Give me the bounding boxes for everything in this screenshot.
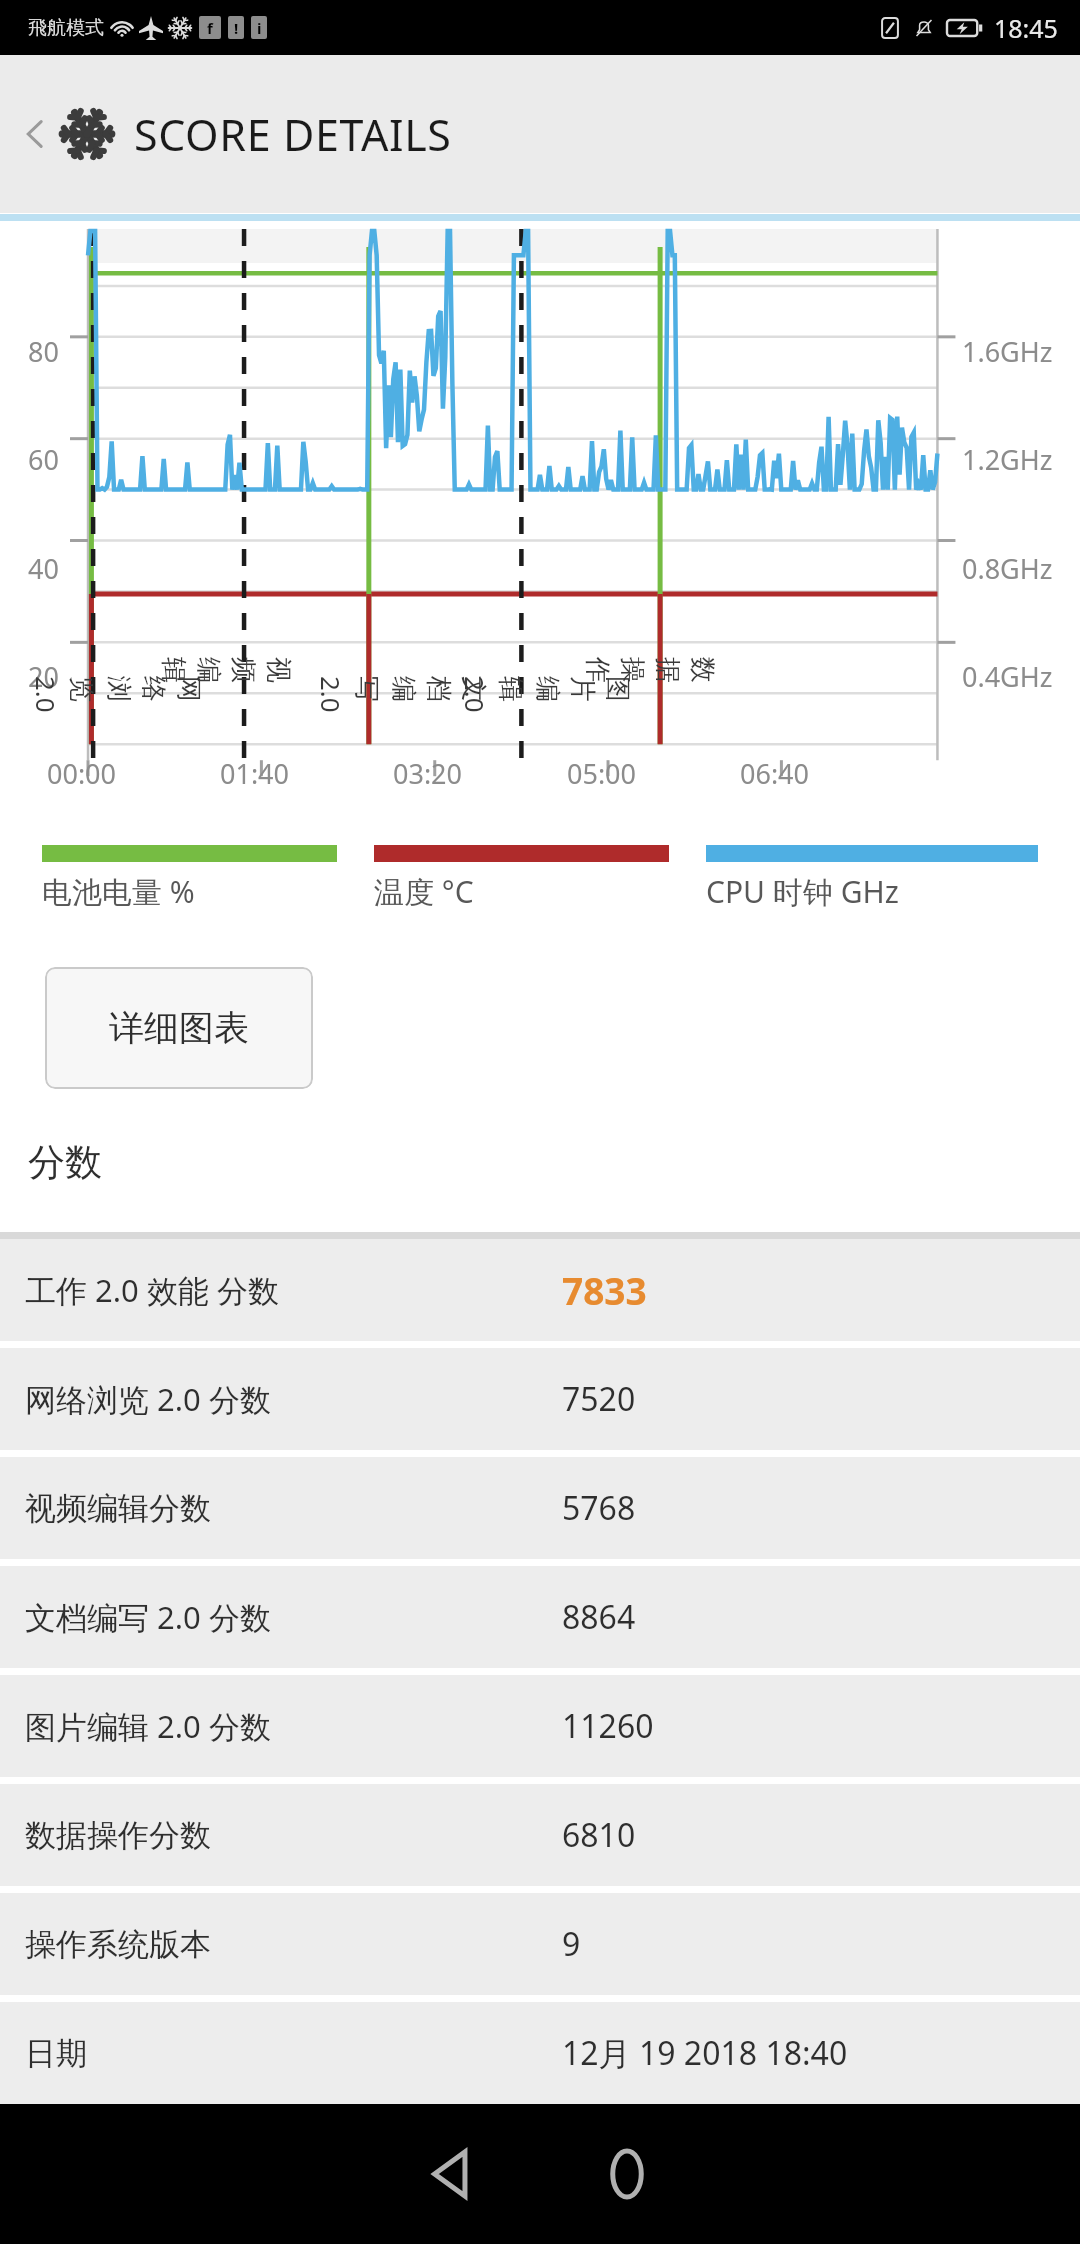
staticText: 数据操作	[581, 657, 719, 699]
staticText: !	[234, 18, 239, 38]
button[interactable]: 操作系统版本	[0, 1893, 1080, 1995]
staticText: 1.2GHz	[962, 441, 1053, 478]
button[interactable]: 数据操作分数	[0, 1784, 1080, 1886]
staticText: 60	[28, 441, 59, 478]
staticText: 图片编辑 2.0 分数	[25, 1705, 271, 1747]
button[interactable]: Home	[567, 2114, 687, 2234]
staticText: 0.4GHz	[962, 658, 1053, 695]
staticText: 6810	[562, 1813, 636, 1857]
button[interactable]: 详细图表	[45, 967, 313, 1089]
staticText: 12月 19 2018 18:40	[562, 2031, 848, 2075]
staticText: 9	[562, 1922, 581, 1966]
button[interactable]: 工作 2.0 效能 分数	[0, 1239, 1080, 1341]
staticText: 电池电量 %	[42, 871, 195, 912]
staticText: 日期	[25, 2034, 87, 2073]
staticText: 1.6GHz	[962, 333, 1053, 370]
button[interactable]: 网络浏览 2.0 分数	[0, 1348, 1080, 1450]
button[interactable]: 日期	[0, 2002, 1080, 2104]
staticText: SCORE DETAILS	[134, 105, 452, 164]
staticText: 03:20	[393, 755, 463, 792]
staticText: 06:40	[740, 755, 810, 792]
staticText: 视频编辑	[157, 657, 295, 699]
staticText: 工作 2.0 效能 分数	[25, 1269, 279, 1311]
staticText: 20	[28, 658, 59, 695]
staticText: 7520	[562, 1377, 636, 1421]
staticText: CPU 时钟 GHz	[706, 871, 899, 912]
staticText: 05:00	[567, 755, 637, 792]
button[interactable]: 图片编辑 2.0 分数	[0, 1675, 1080, 1777]
button[interactable]: Back	[393, 2114, 513, 2234]
staticText: 7833	[562, 1265, 647, 1315]
staticText: 8864	[562, 1595, 636, 1639]
staticText: 视频编辑分数	[25, 1489, 211, 1528]
staticText: 文档编写 2.0 分数	[25, 1596, 271, 1638]
staticText: 操作系统版本	[25, 1925, 211, 1964]
staticText: f	[207, 18, 213, 38]
staticText: i	[257, 18, 262, 38]
button[interactable]: 视频编辑分数	[0, 1457, 1080, 1559]
staticText: 网络浏览 2.0 分数	[25, 1378, 271, 1420]
staticText: 00:00	[47, 755, 117, 792]
staticText: 温度 °C	[374, 871, 474, 912]
button[interactable]: Back	[12, 111, 58, 157]
staticText: 网络浏览 2.0	[29, 676, 205, 718]
staticText: 80	[28, 333, 59, 370]
button[interactable]: 文档编写 2.0 分数	[0, 1566, 1080, 1668]
staticText: 40	[28, 550, 59, 587]
staticText: 0.8GHz	[962, 550, 1053, 587]
staticText: 数据操作分数	[25, 1816, 211, 1855]
staticText: 详细图表	[109, 1006, 249, 1050]
staticText: 01:40	[220, 755, 290, 792]
staticText: 文档编写 2.0	[314, 676, 490, 718]
staticText: 分数	[28, 1139, 102, 1186]
staticText: 5768	[562, 1486, 636, 1530]
staticText: 图片编辑 2.0	[458, 676, 634, 718]
staticText: 11260	[562, 1704, 654, 1748]
staticText: 飛航模式	[28, 16, 104, 40]
staticText: 18:45	[994, 11, 1058, 45]
